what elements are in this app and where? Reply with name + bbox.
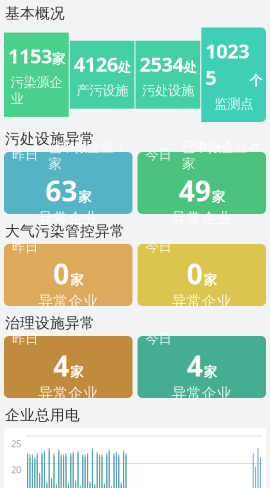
staticText: 0 xyxy=(53,255,69,292)
staticText: 20 xyxy=(11,463,21,476)
staticText: 基本概况 xyxy=(5,4,65,22)
button[interactable]: 昨日 xyxy=(4,152,132,214)
staticText: 0 xyxy=(187,255,203,292)
button[interactable]: 今日 xyxy=(137,152,266,214)
staticText: 异常企业 xyxy=(38,209,98,227)
staticText: 家 xyxy=(204,364,217,380)
staticText: 4 xyxy=(187,347,203,384)
staticText: 已申报企业 1 家 xyxy=(48,138,124,172)
staticText: 今日 xyxy=(145,147,171,163)
staticText: 已申报企业 0 家 xyxy=(182,138,258,172)
staticText: 家 xyxy=(70,272,83,288)
staticText: 监测点 xyxy=(214,96,253,112)
staticText: 污染源企业 xyxy=(10,74,62,107)
staticText: 治理设施异常 xyxy=(5,314,95,332)
staticText: 个 xyxy=(249,72,262,89)
staticText: 2534 xyxy=(139,51,183,77)
button[interactable]: 昨日 xyxy=(4,244,132,306)
staticText: 家 xyxy=(52,51,65,67)
staticText: 家 xyxy=(204,272,217,288)
button[interactable]: 今日 xyxy=(137,244,266,306)
staticText: 异常企业 xyxy=(38,292,98,310)
staticText: 家 xyxy=(70,364,83,380)
staticText: 异常企业 xyxy=(172,384,232,402)
staticText: 49 xyxy=(179,172,211,209)
staticText: 污处设施异常 xyxy=(5,130,95,148)
staticText: 污处设施 xyxy=(142,82,194,99)
button[interactable]: 昨日 xyxy=(4,336,132,398)
button[interactable]: 今日 xyxy=(137,336,266,398)
staticText: 处 xyxy=(118,59,131,76)
staticText: 4126 xyxy=(74,51,118,77)
staticText: 4 xyxy=(53,347,69,384)
staticText: 昨日 xyxy=(12,239,38,255)
staticText: 家 xyxy=(78,189,91,205)
staticText: 产污设施 xyxy=(76,82,128,99)
staticText: 昨日 xyxy=(12,147,38,163)
staticText: 异常企业 xyxy=(172,292,232,310)
staticText: 处 xyxy=(183,59,196,76)
staticText: 今日 xyxy=(145,331,171,347)
staticText: 10235 xyxy=(205,37,249,91)
staticText: 25 xyxy=(11,437,21,450)
staticText: 异常企业 xyxy=(38,384,98,402)
staticText: 昨日 xyxy=(12,331,38,347)
staticText: 大气污染管控异常 xyxy=(5,222,125,240)
staticText: 企业总用电 xyxy=(5,406,80,424)
staticText: 1153 xyxy=(8,43,52,69)
staticText: 今日 xyxy=(145,239,171,255)
staticText: 家 xyxy=(212,189,225,205)
staticText: 异常企业 xyxy=(172,209,232,227)
staticText: 63 xyxy=(45,172,77,209)
